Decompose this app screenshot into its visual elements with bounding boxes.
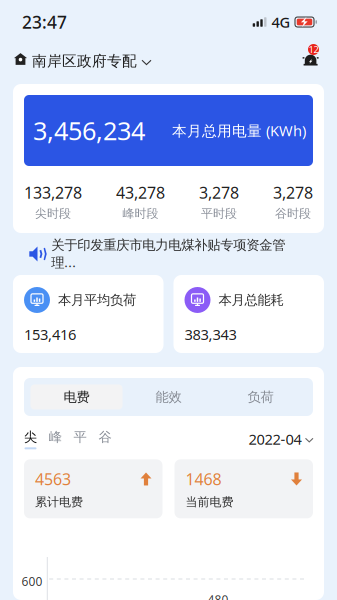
staticText: 4G — [271, 12, 290, 32]
staticText: 峰 — [49, 429, 62, 445]
staticText: 平 — [74, 429, 87, 445]
staticText: 尖时段 — [35, 206, 71, 221]
button[interactable]: 2022-04 — [248, 429, 313, 449]
staticText: 电费 — [63, 389, 89, 405]
staticText: 12 — [308, 43, 318, 56]
staticText: 3,456,234 — [33, 114, 145, 147]
staticText: 谷 — [98, 429, 111, 445]
button[interactable]: 平 — [74, 429, 98, 449]
staticText: 峰时段 — [122, 206, 158, 221]
staticText: 当前电费 — [185, 495, 233, 509]
staticText: 平时段 — [201, 206, 237, 221]
button[interactable]: 负荷 — [214, 384, 306, 409]
staticText: 480 — [207, 592, 228, 600]
staticText: 23:47 — [22, 10, 67, 33]
staticText: 尖 — [24, 429, 37, 445]
staticText: 南岸区政府专配 — [32, 52, 137, 70]
staticText: 本月平均负荷 — [58, 292, 136, 308]
button[interactable]: 南岸区政府专配 — [14, 48, 151, 74]
button[interactable]: 峰 — [49, 429, 74, 449]
staticText: 1468 — [185, 468, 221, 490]
button[interactable]: 电费 — [30, 384, 122, 409]
staticText: 本月总能耗 — [218, 292, 283, 308]
staticText: 谷时段 — [275, 206, 311, 221]
staticText: 本月总用电量 (KWh) — [172, 121, 306, 140]
button[interactable]: 能效 — [122, 384, 214, 409]
button[interactable]: 尖 — [24, 429, 49, 449]
staticText: 133,278 — [24, 182, 82, 203]
button[interactable]: Notifications — [304, 44, 321, 77]
staticText: 负荷 — [247, 389, 273, 405]
staticText: 4563 — [35, 468, 71, 490]
staticText: 153,416 — [24, 324, 76, 344]
button[interactable]: 关于印发重庆市电力电煤补贴专项资金管理... — [13, 239, 324, 269]
button[interactable]: 谷 — [98, 429, 123, 449]
staticText: 600 — [21, 573, 42, 589]
staticText: 3,278 — [273, 182, 313, 203]
staticText: 关于印发重庆市电力电煤补贴专项资金管理... — [51, 237, 285, 271]
staticText: 383,343 — [184, 324, 236, 344]
staticText: 3,278 — [199, 182, 239, 203]
staticText: 2022-04 — [248, 429, 301, 449]
staticText: 能效 — [155, 389, 181, 405]
staticText: 累计电费 — [35, 495, 83, 509]
staticText: 43,278 — [116, 182, 165, 203]
